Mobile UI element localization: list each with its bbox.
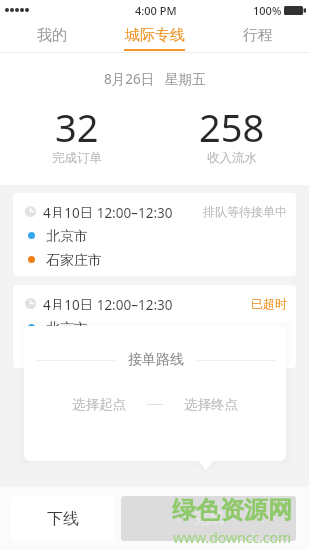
button[interactable]: 城际专线 (103, 19, 206, 51)
staticText: www.downcc.com (173, 528, 292, 547)
staticText: 已超时 (251, 296, 287, 310)
staticText: 下线 (47, 509, 79, 529)
staticText: 完成 (194, 509, 224, 528)
staticText: 北京市 (46, 320, 88, 334)
staticText: 星期五 (165, 71, 206, 88)
staticText: 8月26日 (104, 70, 155, 88)
button[interactable]: 完成 (121, 496, 296, 541)
staticText: 32 (55, 101, 99, 153)
staticText: 选择终点 (184, 396, 238, 413)
staticText: 完成订单 (52, 150, 102, 166)
staticText: 100% (253, 3, 282, 18)
staticText: 258 (199, 101, 265, 153)
staticText: 4月10日 12:00–12:30 (43, 296, 173, 310)
staticText: 选择起点 (72, 396, 126, 413)
button[interactable]: 选择终点 (174, 390, 248, 418)
staticText: 收入流水 (207, 150, 257, 166)
staticText: 4:00 PM (135, 3, 177, 18)
button[interactable]: 下线 (11, 496, 115, 541)
button[interactable]: 4月10日 12:00–12:30 (13, 193, 296, 276)
staticText: 行程 (243, 26, 273, 45)
staticText: 城际专线 (125, 26, 185, 45)
staticText: 石家庄市 (46, 252, 102, 266)
staticText: 接单路线 (128, 351, 184, 369)
button[interactable]: 4月10日 12:00–12:30 (13, 285, 296, 368)
button[interactable]: 选择起点 (62, 390, 136, 418)
staticText: 4月10日 12:00–12:30 (43, 204, 173, 218)
button[interactable]: 行程 (206, 19, 309, 51)
staticText: 绿色资源网 (172, 495, 292, 525)
button[interactable]: 我的 (0, 19, 103, 51)
staticText: 北京市 (46, 228, 88, 242)
staticText: 排队等待接单中 (203, 204, 287, 218)
staticText: 我的 (37, 26, 67, 45)
